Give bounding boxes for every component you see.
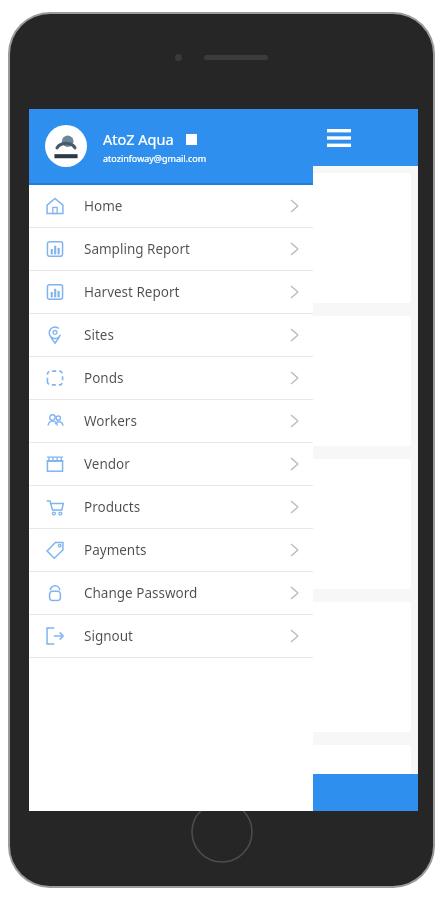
button[interactable]: 10 xyxy=(36,316,411,446)
staticText: Hapa : xyxy=(48,423,81,436)
staticText: Sampling Report xyxy=(84,240,190,258)
button[interactable]: Signout xyxy=(29,615,313,657)
staticText: 91.09 % xyxy=(81,566,116,579)
staticText: Feed : xyxy=(48,515,79,528)
button[interactable]: Change Password xyxy=(29,572,313,614)
staticText: 97.30 % xyxy=(81,280,116,293)
staticText: 58.600 K xyxy=(100,406,139,419)
staticText: Products xyxy=(84,498,141,516)
button[interactable]: Harvest Report xyxy=(29,271,313,313)
staticText: Signout xyxy=(84,627,133,645)
staticText: 95.05 % xyxy=(81,423,116,436)
button[interactable]: Sites xyxy=(29,314,313,356)
staticText: Sites xyxy=(84,326,114,344)
staticText: 9,281.6/Kg xyxy=(79,372,127,385)
button[interactable]: Home xyxy=(29,185,313,227)
button[interactable]: Payments xyxy=(29,529,313,571)
staticText: Hapa : xyxy=(48,566,81,579)
button[interactable]: Workers xyxy=(29,400,313,442)
staticText: Hatchery : Goldan M xyxy=(48,207,140,220)
staticText: No2 xyxy=(69,181,99,201)
staticText: Harvest Report xyxy=(84,283,180,301)
button[interactable]: Edit profile xyxy=(183,131,199,147)
staticText: 349 Days xyxy=(77,389,118,402)
staticText: Home xyxy=(84,197,123,215)
button[interactable]: Ponds xyxy=(29,357,313,399)
button[interactable]: Sampling Report xyxy=(29,228,313,270)
staticText: Feed : xyxy=(48,372,79,385)
staticText: Vendor xyxy=(84,455,130,473)
staticText: Hapa : xyxy=(48,280,81,293)
staticText: Payments xyxy=(84,541,147,559)
staticText: DOC : xyxy=(48,246,77,259)
button[interactable]: 9 xyxy=(36,459,411,589)
staticText: Hatchery : NGR (350 xyxy=(48,636,138,649)
button[interactable]: 8 xyxy=(36,602,411,732)
button[interactable]: Products xyxy=(29,486,313,528)
button[interactable]: No2 xyxy=(36,173,411,303)
staticText: 8 xyxy=(69,610,78,630)
staticText: Change Password xyxy=(84,584,198,602)
staticText: Hatchery : NGR (255 xyxy=(48,350,138,363)
staticText: Hatchery : Goldan M xyxy=(48,493,140,506)
staticText: Ponds xyxy=(84,369,124,387)
staticText: 10 xyxy=(69,324,87,344)
staticText: AVG Feed : xyxy=(48,406,100,419)
button[interactable]: Vendor xyxy=(29,443,313,485)
staticText: 55.800 K xyxy=(100,263,139,276)
staticText: DOC : xyxy=(48,389,77,402)
staticText: AVG Feed : xyxy=(48,263,100,276)
staticText: atozinfoway@gmail.com xyxy=(103,152,207,164)
staticText: DOC : xyxy=(48,532,77,545)
staticText: 293 Days xyxy=(77,246,118,259)
staticText: Workers xyxy=(84,412,137,430)
staticText: 9 xyxy=(69,467,78,487)
staticText: Feed : xyxy=(48,229,79,242)
staticText: AVG Feed : xyxy=(48,549,100,562)
staticText: 75.400 K xyxy=(100,549,139,562)
staticText: AtoZ Aqua xyxy=(103,129,174,149)
button[interactable]: Open navigation menu xyxy=(321,120,357,156)
